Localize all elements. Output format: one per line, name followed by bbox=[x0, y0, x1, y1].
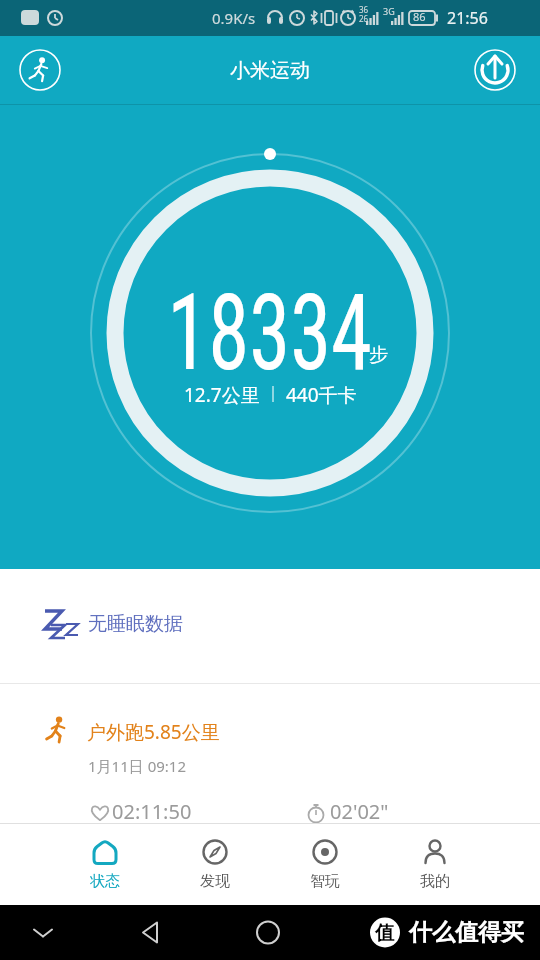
staticText: 发现 bbox=[200, 872, 230, 891]
staticText: 02:11:50 bbox=[112, 798, 192, 825]
staticText: 无睡眠数据 bbox=[88, 612, 183, 636]
button[interactable]: 户外跑5.85公里 bbox=[0, 684, 540, 823]
staticText: 26 bbox=[359, 13, 369, 24]
staticText: 小米运动 bbox=[230, 58, 310, 83]
staticText: 3G bbox=[383, 5, 395, 17]
staticText: 户外跑5.85公里 bbox=[87, 719, 220, 745]
button[interactable] bbox=[473, 48, 517, 92]
staticText: 0.9K/s bbox=[212, 8, 256, 28]
button[interactable]: 无睡眠数据 bbox=[0, 569, 540, 683]
button[interactable]: 智玩 bbox=[270, 823, 380, 905]
staticText: 440千卡 bbox=[286, 382, 357, 406]
staticText: 状态 bbox=[90, 872, 120, 891]
staticText: 18334 bbox=[167, 272, 373, 395]
staticText: 步 bbox=[369, 343, 388, 367]
staticText: 86 bbox=[413, 9, 426, 24]
staticText: 12.7公里 bbox=[184, 382, 260, 406]
staticText: 02'02" bbox=[330, 798, 389, 825]
staticText: 什么值得买 bbox=[409, 918, 524, 947]
staticText: 我的 bbox=[420, 872, 450, 891]
staticText: 值 bbox=[375, 921, 394, 945]
button[interactable] bbox=[18, 48, 62, 92]
staticText: 21:56 bbox=[447, 7, 488, 29]
staticText: 36 bbox=[359, 4, 369, 15]
staticText: 智玩 bbox=[310, 872, 340, 891]
button[interactable]: 状态 bbox=[50, 823, 160, 905]
button[interactable]: 我的 bbox=[380, 823, 490, 905]
button[interactable]: 发现 bbox=[160, 823, 270, 905]
staticText: 1月11日 09:12 bbox=[88, 756, 186, 776]
